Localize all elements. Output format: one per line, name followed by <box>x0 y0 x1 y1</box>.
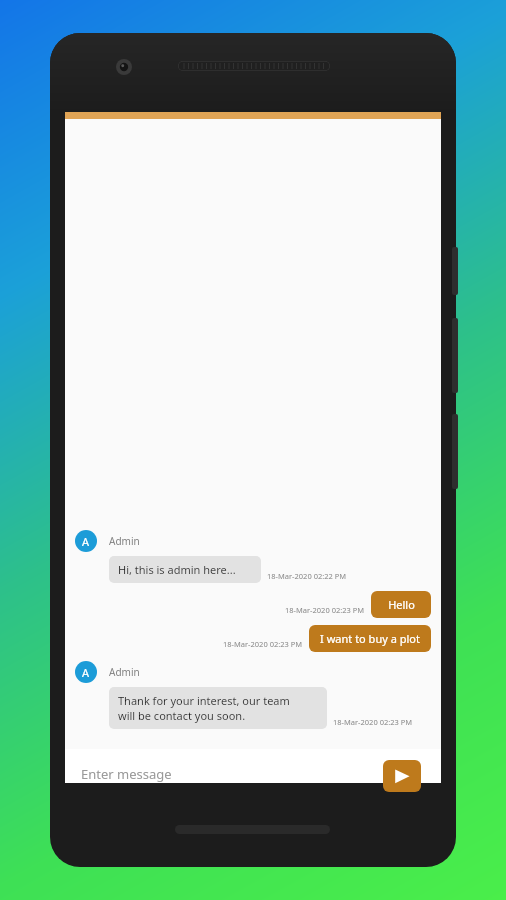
staticText: Enter message <box>81 765 172 783</box>
button[interactable]: Hi, this is admin here... <box>109 556 261 583</box>
staticText: Admin <box>109 534 140 548</box>
staticText: 18-Mar-2020 02:23 PM <box>285 605 365 615</box>
staticText: Hi, this is admin here... <box>118 562 236 577</box>
staticText: I want to buy a plot <box>320 631 420 646</box>
staticText: Admin <box>109 665 140 679</box>
button[interactable]: I want to buy a plot <box>309 625 431 652</box>
button[interactable]: Send <box>383 760 421 792</box>
staticText: 18-Mar-2020 02:22 PM <box>267 571 347 581</box>
button[interactable]: Thank for your interest, our team will b… <box>109 687 327 729</box>
staticText: A <box>82 534 90 549</box>
staticText: 18-Mar-2020 02:23 PM <box>223 639 303 649</box>
staticText: 18-Mar-2020 02:23 PM <box>333 717 413 727</box>
button[interactable]: Enter message <box>81 765 379 783</box>
staticText: A <box>82 665 90 680</box>
button[interactable]: Hello <box>371 591 431 618</box>
staticText: Thank for your interest, our team will b… <box>118 693 290 723</box>
staticText: Hello <box>388 597 415 612</box>
